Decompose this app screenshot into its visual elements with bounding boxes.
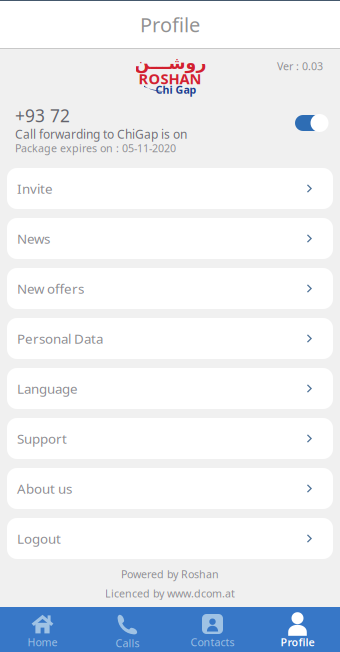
button[interactable]: Call forwarding toggle — [294, 104, 330, 137]
button[interactable]: Language — [7, 368, 333, 409]
staticText: روشـــن — [134, 53, 206, 73]
staticText: Call forwarding to ChiGap is on — [15, 126, 187, 142]
staticText: Calls — [115, 636, 139, 650]
button[interactable]: New offers — [7, 268, 333, 309]
button[interactable]: Home — [0, 607, 85, 652]
staticText: Home — [27, 635, 57, 649]
button[interactable]: Personal Data — [7, 318, 333, 359]
staticText: Contacts — [190, 635, 234, 649]
staticText: Invite — [17, 180, 53, 197]
staticText: Language — [17, 380, 78, 397]
staticText: Chi Gap — [155, 82, 196, 97]
button[interactable]: Contacts — [170, 607, 255, 652]
button[interactable]: Support — [7, 418, 333, 459]
staticText: Ver : 0.03 — [277, 59, 323, 73]
button[interactable]: Profile — [255, 607, 340, 652]
staticText: Logout — [17, 530, 61, 547]
staticText: New offers — [17, 280, 84, 297]
staticText: Package expires on : 05-11-2020 — [15, 141, 176, 155]
button[interactable]: Invite — [7, 168, 333, 209]
staticText: News — [17, 230, 50, 247]
button[interactable]: Calls — [85, 607, 170, 652]
staticText: ROSHAN — [138, 69, 201, 88]
staticText: Personal Data — [17, 330, 103, 347]
button[interactable]: Logout — [7, 518, 333, 559]
staticText: +93 72 — [15, 104, 70, 127]
staticText: Licenced by www.dcom.at — [105, 586, 235, 600]
button[interactable]: News — [7, 218, 333, 259]
staticText: About us — [17, 480, 72, 497]
staticText: Profile — [280, 635, 314, 649]
button[interactable]: About us — [7, 468, 333, 509]
staticText: Powered by Roshan — [121, 567, 219, 581]
staticText: Profile — [140, 11, 200, 38]
staticText: Support — [17, 430, 67, 447]
